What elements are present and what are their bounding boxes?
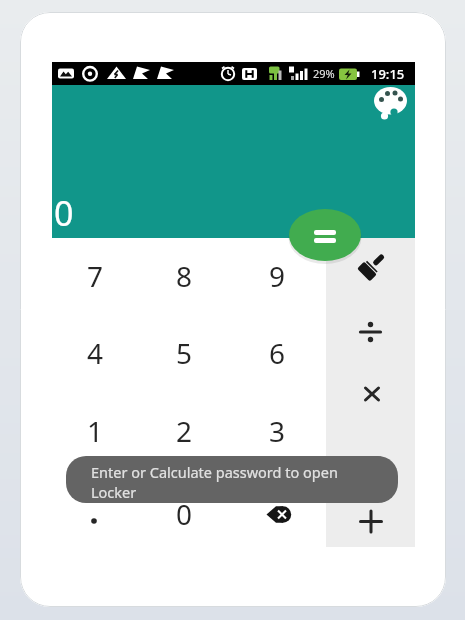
button[interactable]: 1 — [50, 393, 140, 469]
button[interactable]: 2 — [139, 393, 229, 469]
button[interactable]: 6 — [232, 315, 322, 391]
staticText: Enter or Calculate password to open — [91, 462, 338, 482]
button[interactable] — [50, 476, 140, 552]
button[interactable] — [326, 363, 415, 425]
button[interactable] — [326, 237, 415, 299]
staticText: 29% — [313, 66, 335, 81]
button[interactable]: 9 — [232, 238, 322, 314]
staticText: 7 — [87, 257, 104, 295]
staticText: 5 — [176, 334, 193, 372]
staticText: 1 — [87, 412, 104, 450]
button[interactable]: 7 — [50, 238, 140, 314]
button[interactable]: 0 — [139, 476, 229, 552]
staticText: Locker — [91, 482, 137, 502]
button[interactable] — [371, 83, 411, 120]
button[interactable] — [233, 476, 323, 552]
staticText: 8 — [176, 257, 193, 295]
staticText: 0 — [54, 190, 74, 232]
staticText: 3 — [269, 412, 286, 450]
button[interactable] — [326, 301, 415, 363]
button[interactable]: 8 — [139, 238, 229, 314]
staticText: 9 — [269, 257, 286, 295]
staticText: 19:15 — [371, 65, 405, 82]
button[interactable] — [288, 208, 362, 264]
button[interactable]: 3 — [232, 393, 322, 469]
button[interactable]: 4 — [50, 315, 140, 391]
button[interactable] — [326, 427, 415, 489]
button[interactable] — [326, 491, 415, 553]
staticText: 4 — [87, 334, 104, 372]
staticText: 0 — [176, 495, 193, 533]
button[interactable]: 5 — [139, 315, 229, 391]
staticText: 2 — [176, 412, 193, 450]
staticText: 6 — [269, 334, 286, 372]
